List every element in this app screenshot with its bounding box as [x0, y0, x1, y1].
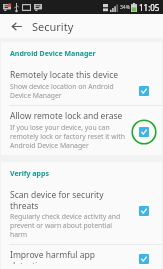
button[interactable]: Toggle Remotely locate this device: [131, 78, 157, 104]
staticText: Show device location on Android Device M…: [10, 82, 114, 100]
button[interactable]: Toggle Improve harmful app detection: [131, 251, 157, 266]
button[interactable]: Scan device for security threats: [1, 185, 162, 244]
staticText: Verify apps: [10, 169, 49, 179]
staticText: Improve harmful app detection: [10, 249, 127, 264]
button[interactable]: Allow remote lock and erase: [1, 106, 162, 155]
staticText: 11:05: [139, 2, 160, 13]
button[interactable]: Remotely locate this device: [1, 65, 162, 105]
button[interactable]: Improve harmful app detection: [1, 245, 162, 269]
button[interactable]: Toggle Scan device for security threats: [131, 198, 157, 224]
staticText: Allow remote lock and erase: [10, 110, 123, 122]
staticText: 34%: [120, 4, 130, 11]
staticText: If you lose your device, you can remotel…: [10, 123, 126, 150]
button[interactable]: Toggle Allow remote lock and erase: [131, 119, 157, 145]
staticText: Security: [32, 19, 74, 34]
staticText: Android Device Manager: [10, 49, 96, 59]
button[interactable]: Back: [8, 18, 24, 34]
staticText: Remotely locate this device: [10, 69, 119, 81]
staticText: Regularly check device activity and prev…: [10, 212, 127, 239]
staticText: Scan device for security threats: [10, 189, 127, 211]
